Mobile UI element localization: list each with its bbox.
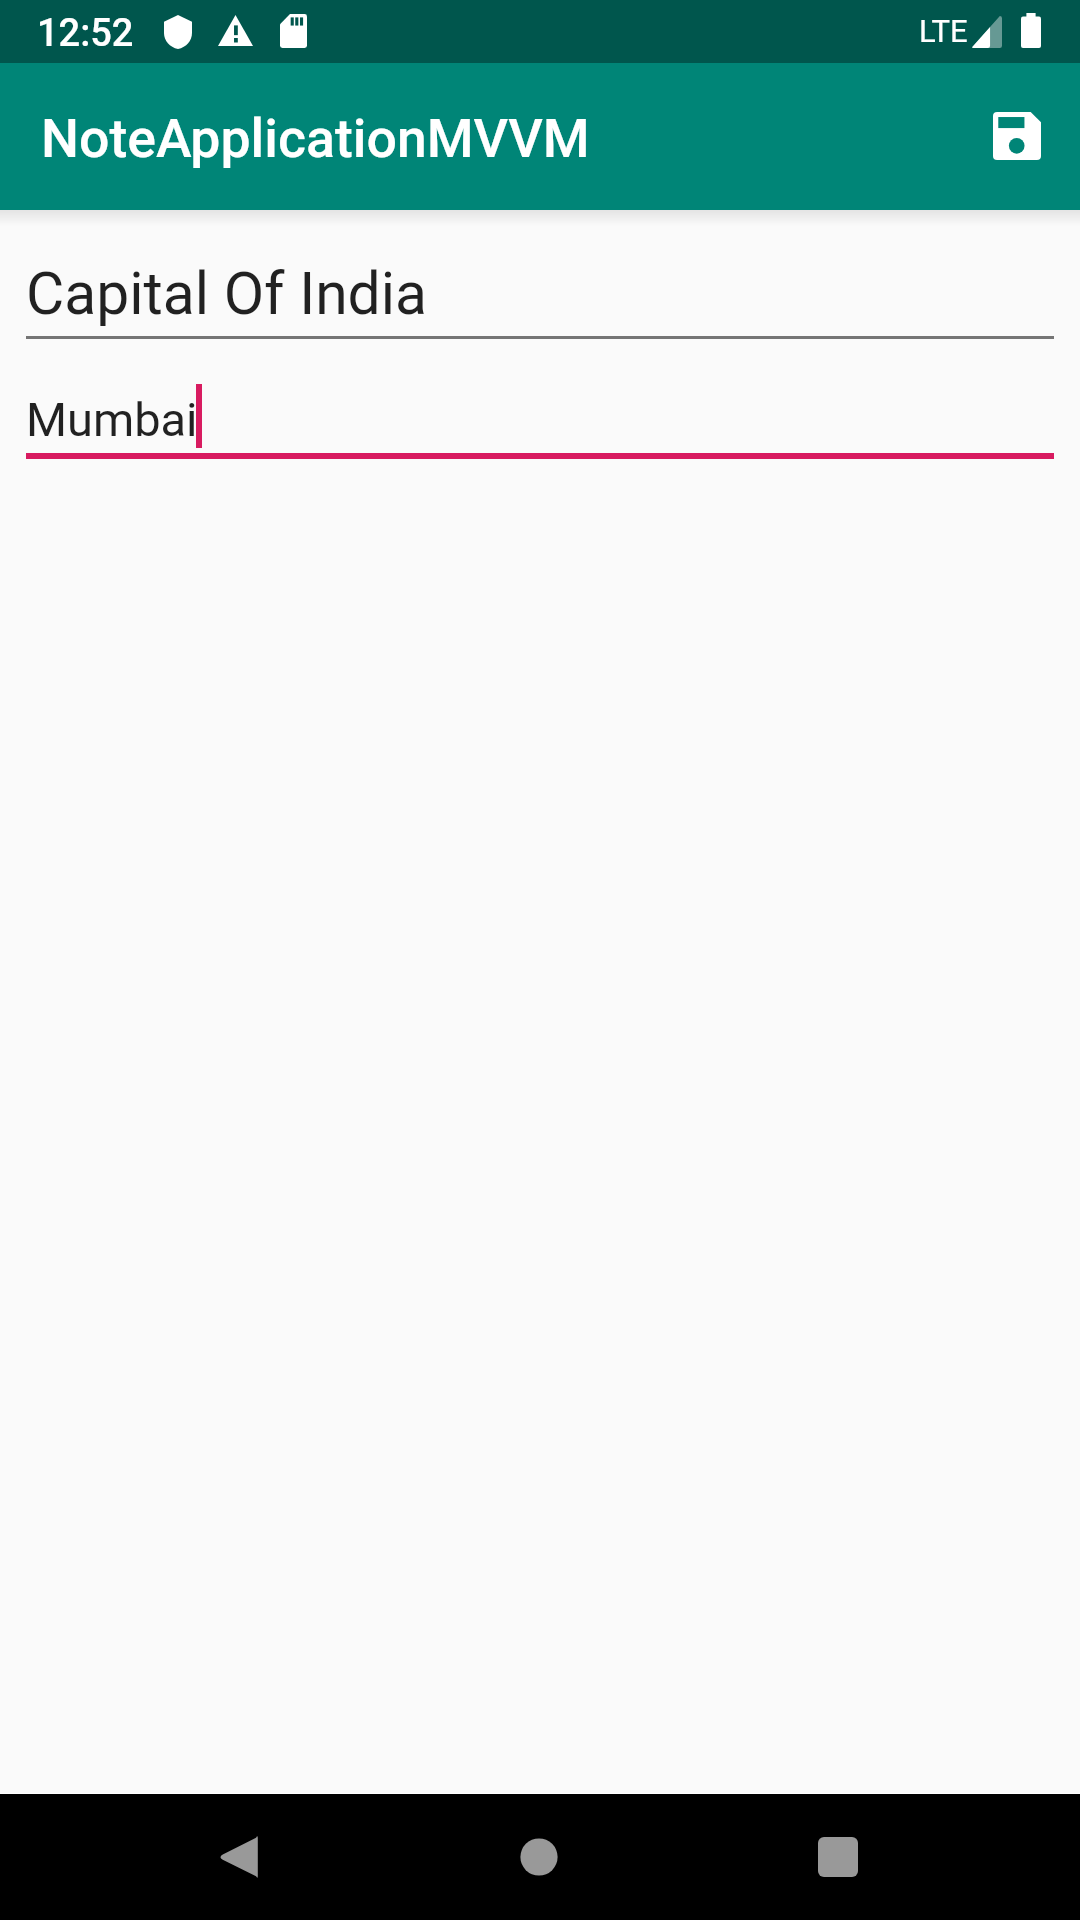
staticText: Capital Of India	[26, 259, 428, 328]
button[interactable]: Mumbai	[0, 345, 1080, 465]
button[interactable]: Save note	[969, 89, 1065, 185]
button[interactable]: Back	[178, 1797, 298, 1917]
button[interactable]: Recent apps	[778, 1797, 898, 1917]
staticText: Mumbai	[26, 392, 198, 447]
staticText: NoteApplicationMVVM	[41, 107, 590, 170]
button[interactable]: Capital Of India	[0, 230, 1080, 342]
staticText: LTE	[919, 13, 968, 49]
button[interactable]: Home	[479, 1797, 599, 1917]
staticText: 12:52	[37, 11, 134, 56]
